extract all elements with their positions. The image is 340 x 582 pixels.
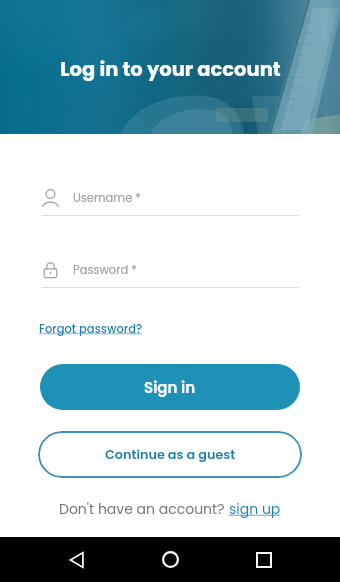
button[interactable]: Home: [146, 537, 194, 582]
button[interactable]: Recent apps: [240, 537, 288, 582]
button[interactable]: sign up: [229, 499, 281, 519]
staticText: Sign in: [144, 377, 196, 398]
staticText: Password *: [73, 262, 137, 278]
staticText: Forgot password?: [39, 321, 143, 337]
staticText: Log in to your account: [60, 56, 281, 83]
staticText: sign up: [229, 499, 281, 519]
staticText: Username *: [73, 190, 141, 206]
button[interactable]: Forgot password?: [39, 321, 143, 337]
staticText: Continue as a guest: [105, 446, 236, 464]
button[interactable]: Back: [53, 537, 101, 582]
button[interactable]: Sign in: [40, 364, 300, 410]
staticText: Don't have an account?: [59, 499, 229, 519]
button[interactable]: Continue as a guest: [38, 431, 302, 478]
